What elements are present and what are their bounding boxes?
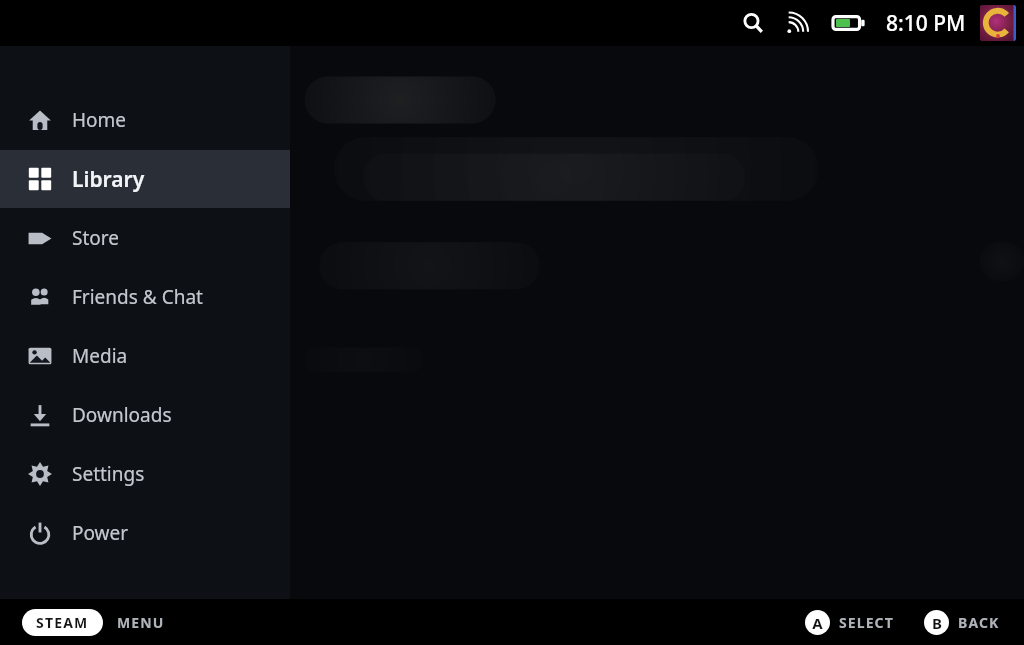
staticText: Store xyxy=(72,225,119,251)
staticText: MENU xyxy=(117,613,165,632)
button[interactable]: A xyxy=(803,610,896,635)
other: Search xyxy=(742,12,764,34)
staticText: Media xyxy=(72,343,128,369)
staticText: Settings xyxy=(72,461,145,487)
staticText: Home xyxy=(72,107,127,133)
other: Battery xyxy=(832,13,866,33)
button[interactable]: Search xyxy=(734,4,772,42)
button[interactable]: B xyxy=(922,610,1002,635)
button[interactable]: Library xyxy=(0,150,290,208)
staticText: B xyxy=(932,613,942,633)
staticText: Library xyxy=(72,165,145,194)
button[interactable]: Media xyxy=(0,327,290,385)
button[interactable]: Network xyxy=(780,6,814,40)
button[interactable]: Battery xyxy=(828,9,870,37)
staticText: Friends & Chat xyxy=(72,284,203,310)
staticText: BACK xyxy=(958,613,1000,632)
button[interactable]: Settings xyxy=(0,445,290,503)
staticText: Power xyxy=(72,520,129,546)
staticText: A xyxy=(812,613,823,633)
staticText: Downloads xyxy=(72,402,172,428)
other: Network xyxy=(786,12,808,34)
staticText: 8:10 PM xyxy=(886,9,966,38)
button[interactable]: Downloads xyxy=(0,386,290,444)
button[interactable]: Store xyxy=(0,209,290,267)
button[interactable]: Friends & Chat xyxy=(0,268,290,326)
button[interactable]: STEAM xyxy=(22,609,103,636)
button[interactable]: Profile xyxy=(980,5,1016,41)
button[interactable]: Power xyxy=(0,504,290,562)
staticText: STEAM xyxy=(36,613,89,632)
staticText: SELECT xyxy=(839,613,894,632)
button[interactable]: Home xyxy=(0,91,290,149)
